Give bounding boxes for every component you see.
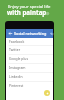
button[interactable]: Google plus: [6, 54, 53, 63]
button[interactable]: Pinterest: [6, 81, 53, 90]
staticText: Instagram: [9, 65, 26, 70]
other: Back: [8, 31, 13, 36]
staticText: Twitter: [9, 47, 21, 52]
staticText: Facebook: [9, 39, 25, 44]
button[interactable]: Linkedin: [6, 72, 53, 81]
button[interactable]: Twitter: [6, 45, 53, 54]
staticText: Linkedin: [9, 74, 23, 79]
button[interactable]: Add: [44, 90, 50, 96]
staticText: Enjoy your special life: [8, 4, 51, 10]
other: Search: [50, 32, 53, 36]
other: Logo: [45, 11, 50, 16]
staticText: Google plus: [9, 56, 29, 61]
staticText: with paintap: [7, 8, 47, 16]
button[interactable]: Back: [6, 29, 53, 38]
staticText: Pinterest: [9, 83, 24, 88]
staticText: Social networking: [14, 31, 47, 36]
button[interactable]: Facebook: [6, 38, 53, 45]
button[interactable]: Instagram: [6, 63, 53, 72]
